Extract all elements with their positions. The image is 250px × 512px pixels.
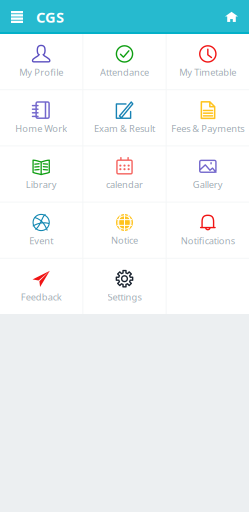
staticText: Exam & Result: [94, 122, 155, 134]
button[interactable]: Feedback: [0, 259, 82, 314]
staticText: Gallery: [193, 178, 223, 191]
button[interactable]: Settings: [83, 259, 166, 314]
staticText: My Timetable: [179, 66, 236, 78]
button[interactable]: My Profile: [0, 34, 82, 89]
button[interactable]: Home: [225, 0, 249, 34]
button[interactable]: Home Work: [0, 90, 82, 145]
staticText: Library: [26, 178, 57, 191]
button[interactable]: Exam & Result: [83, 90, 166, 145]
button[interactable]: calendar: [83, 146, 166, 202]
staticText: Home Work: [15, 122, 67, 134]
button[interactable]: Gallery: [167, 146, 249, 202]
staticText: CGS: [36, 7, 64, 27]
button[interactable]: My Timetable: [167, 34, 249, 89]
button[interactable]: Menu: [0, 0, 36, 34]
staticText: Event: [29, 234, 53, 247]
button[interactable]: Notice: [83, 203, 166, 258]
button[interactable]: Attendance: [83, 34, 166, 89]
button[interactable]: Event: [0, 203, 82, 258]
button[interactable]: Library: [0, 146, 82, 202]
button[interactable]: Notifications: [167, 203, 249, 258]
staticText: Feedback: [21, 291, 62, 303]
staticText: calendar: [106, 178, 143, 191]
staticText: Notice: [111, 234, 138, 246]
button[interactable]: Fees & Payments: [167, 90, 249, 145]
staticText: Notifications: [181, 234, 235, 247]
staticText: Fees & Payments: [171, 122, 244, 134]
staticText: My Profile: [19, 66, 63, 78]
staticText: Settings: [107, 291, 141, 303]
staticText: Attendance: [100, 66, 149, 78]
